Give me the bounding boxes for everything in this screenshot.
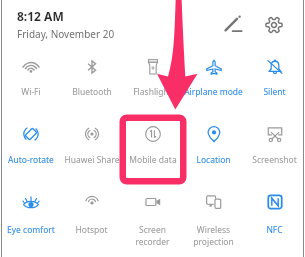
- button[interactable]: Edit: [222, 14, 244, 36]
- staticText: Hotspot: [75, 224, 108, 236]
- button[interactable]: Location: [183, 120, 244, 172]
- button[interactable]: Silent: [244, 53, 305, 105]
- button[interactable]: Flashlight: [122, 53, 183, 105]
- button[interactable]: Screenshot: [244, 120, 305, 172]
- staticText: Auto-rotate: [8, 154, 54, 166]
- button[interactable]: Airplane mode: [183, 53, 244, 105]
- staticText: Mobile data: [129, 154, 177, 166]
- button[interactable]: Hotspot: [61, 188, 122, 240]
- button[interactable]: Screen recorder: [122, 188, 183, 240]
- button[interactable]: NFC: [244, 188, 305, 240]
- button[interactable]: Bluetooth: [61, 53, 122, 105]
- button[interactable]: Eye comfort: [0, 188, 61, 240]
- staticText: Wi-Fi: [21, 86, 41, 98]
- staticText: Eye comfort: [7, 224, 55, 236]
- staticText: NFC: [266, 224, 283, 236]
- button[interactable]: Huawei Share: [61, 120, 122, 172]
- button[interactable]: Settings: [263, 14, 285, 36]
- button[interactable]: Wi-Fi: [0, 53, 61, 105]
- button[interactable]: Mobile data: [122, 120, 183, 172]
- staticText: Friday, November 20: [17, 27, 115, 41]
- staticText: Huawei Share: [64, 154, 120, 166]
- staticText: Location: [196, 154, 231, 166]
- staticText: Airplane mode: [184, 86, 243, 98]
- button[interactable]: Wireless projection: [183, 188, 244, 240]
- staticText: 8:12 AM: [17, 8, 64, 24]
- staticText: Flashlight: [133, 86, 172, 98]
- staticText: Wireless projection: [193, 224, 234, 248]
- staticText: Screenshot: [252, 154, 297, 166]
- staticText: Screen recorder: [135, 224, 170, 248]
- staticText: Bluetooth: [72, 86, 112, 98]
- button[interactable]: Auto-rotate: [0, 120, 61, 172]
- staticText: Silent: [263, 86, 286, 98]
